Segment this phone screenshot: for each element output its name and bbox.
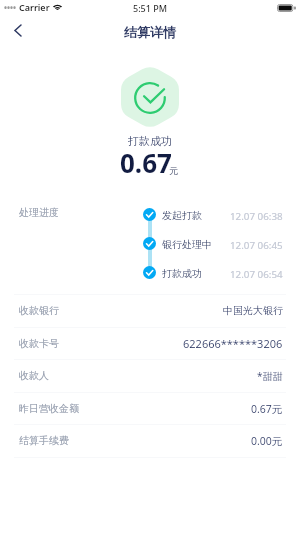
- staticText: 0.00元: [251, 434, 283, 448]
- button[interactable]: 收款人: [0, 359, 300, 392]
- staticText: 中国光大银行: [223, 304, 283, 317]
- staticText: 0.67: [120, 145, 172, 180]
- staticText: ••••: [4, 2, 17, 13]
- staticText: 打款成功: [128, 134, 172, 148]
- button[interactable]: 昨日营收金额: [0, 392, 300, 425]
- staticText: 12.07 06:45: [230, 239, 283, 252]
- staticText: 收款银行: [19, 304, 59, 317]
- staticText: 12.07 06:54: [230, 268, 283, 281]
- staticText: 打款成功: [162, 267, 202, 280]
- staticText: 622666******3206: [183, 336, 283, 351]
- staticText: *甜甜: [257, 369, 283, 383]
- staticText: 收款卡号: [19, 337, 59, 350]
- staticText: 结算详情: [124, 24, 176, 40]
- staticText: Carrier: [19, 1, 50, 13]
- staticText: 元: [169, 165, 178, 176]
- staticText: 结算手续费: [19, 434, 69, 447]
- button[interactable]: Back: [5, 17, 31, 43]
- staticText: 12.07 06:38: [230, 210, 283, 223]
- staticText: 银行处理中: [162, 238, 212, 251]
- button[interactable]: 收款银行: [0, 294, 300, 327]
- button[interactable]: 结算手续费: [0, 424, 300, 457]
- staticText: 处理进度: [19, 206, 59, 219]
- button[interactable]: 收款卡号: [0, 327, 300, 360]
- staticText: 发起打款: [162, 209, 202, 222]
- staticText: 昨日营收金额: [19, 402, 79, 415]
- staticText: 5:51 PM: [133, 2, 167, 14]
- staticText: 收款人: [19, 369, 49, 382]
- staticText: 0.67元: [251, 402, 283, 416]
